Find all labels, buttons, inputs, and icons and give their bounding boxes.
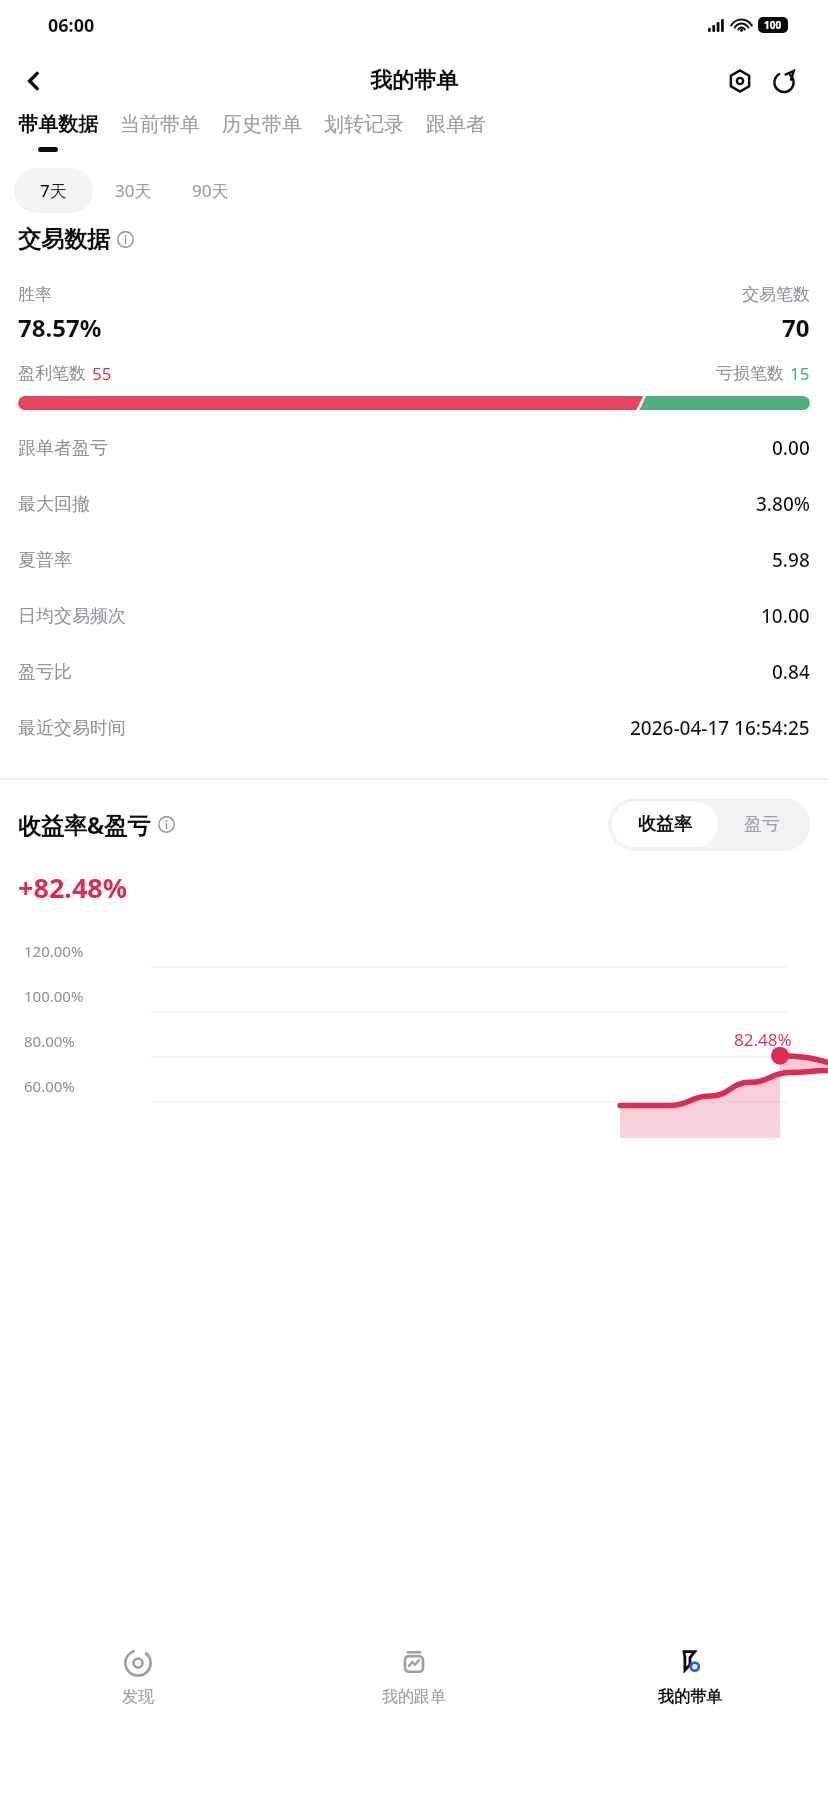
- button[interactable]: 带单数据: [18, 112, 120, 137]
- staticText: 日均交易频次: [18, 605, 126, 628]
- staticText: 78.57%: [18, 311, 102, 344]
- button[interactable]: 30天: [93, 168, 174, 213]
- staticText: 收益率: [638, 813, 692, 836]
- other: Info: [158, 816, 175, 833]
- staticText: 70: [782, 311, 810, 344]
- staticText: 发现: [122, 1687, 154, 1707]
- other: Info: [117, 231, 134, 248]
- staticText: 82.48%: [734, 1028, 792, 1051]
- staticText: 胜率: [18, 284, 52, 305]
- staticText: 盈亏: [744, 813, 780, 836]
- button[interactable]: 日均交易频次: [0, 588, 828, 644]
- staticText: 0.00: [772, 435, 810, 461]
- staticText: 带单数据: [18, 112, 98, 137]
- staticText: 0.84: [772, 659, 810, 685]
- staticText: 2026-04-17 16:54:25: [630, 715, 810, 741]
- button[interactable]: 跟单者盈亏: [0, 420, 828, 476]
- staticText: 跟单者: [426, 112, 486, 137]
- staticText: 最近交易时间: [18, 717, 126, 740]
- staticText: 15: [790, 362, 810, 385]
- button[interactable]: Settings: [718, 59, 762, 103]
- staticText: 06:00: [48, 13, 95, 38]
- staticText: 7天: [40, 179, 67, 202]
- staticText: 历史带单: [222, 112, 302, 137]
- staticText: 当前带单: [120, 112, 200, 137]
- staticText: 100.00%: [24, 986, 84, 1006]
- button[interactable]: 我的跟单: [276, 1642, 552, 1713]
- staticText: 我的带单: [658, 1687, 722, 1707]
- staticText: 3.80%: [756, 491, 810, 517]
- staticText: 盈亏比: [18, 661, 72, 684]
- staticText: 夏普率: [18, 549, 72, 572]
- staticText: 划转记录: [324, 112, 404, 137]
- staticText: +82.48%: [18, 869, 128, 906]
- staticText: 30天: [115, 179, 152, 202]
- button[interactable]: 划转记录: [324, 112, 426, 137]
- staticText: 盈利笔数: [18, 363, 86, 384]
- button[interactable]: 最大回撤: [0, 476, 828, 532]
- staticText: 交易数据: [18, 225, 110, 254]
- button[interactable]: 盈亏: [718, 802, 806, 847]
- staticText: 跟单者盈亏: [18, 437, 108, 460]
- staticText: 100: [764, 18, 782, 32]
- button[interactable]: 发现: [0, 1642, 276, 1713]
- staticText: 交易笔数: [742, 284, 810, 305]
- button[interactable]: 盈亏比: [0, 644, 828, 700]
- staticText: 我的带单: [370, 67, 458, 95]
- button[interactable]: 最近交易时间: [0, 700, 828, 756]
- staticText: 60.00%: [24, 1076, 75, 1096]
- staticText: 亏损笔数: [716, 363, 784, 384]
- staticText: 55: [92, 362, 112, 385]
- staticText: 最大回撤: [18, 493, 90, 516]
- staticText: 80.00%: [24, 1031, 75, 1051]
- staticText: 90天: [192, 179, 229, 202]
- staticText: 10.00: [761, 603, 810, 629]
- button[interactable]: 当前带单: [120, 112, 222, 137]
- button[interactable]: 夏普率: [0, 532, 828, 588]
- button[interactable]: Back: [10, 57, 58, 105]
- button[interactable]: 跟单者: [426, 112, 486, 137]
- staticText: 我的跟单: [382, 1687, 446, 1707]
- button[interactable]: 历史带单: [222, 112, 324, 137]
- staticText: 5.98: [772, 547, 810, 573]
- staticText: 120.00%: [24, 941, 84, 961]
- button[interactable]: 我的带单: [552, 1642, 828, 1713]
- button[interactable]: Share: [762, 59, 806, 103]
- button[interactable]: 90天: [174, 168, 247, 213]
- button[interactable]: 7天: [14, 168, 93, 213]
- button[interactable]: 收益率: [612, 802, 718, 847]
- staticText: 收益率&盈亏: [18, 809, 151, 840]
